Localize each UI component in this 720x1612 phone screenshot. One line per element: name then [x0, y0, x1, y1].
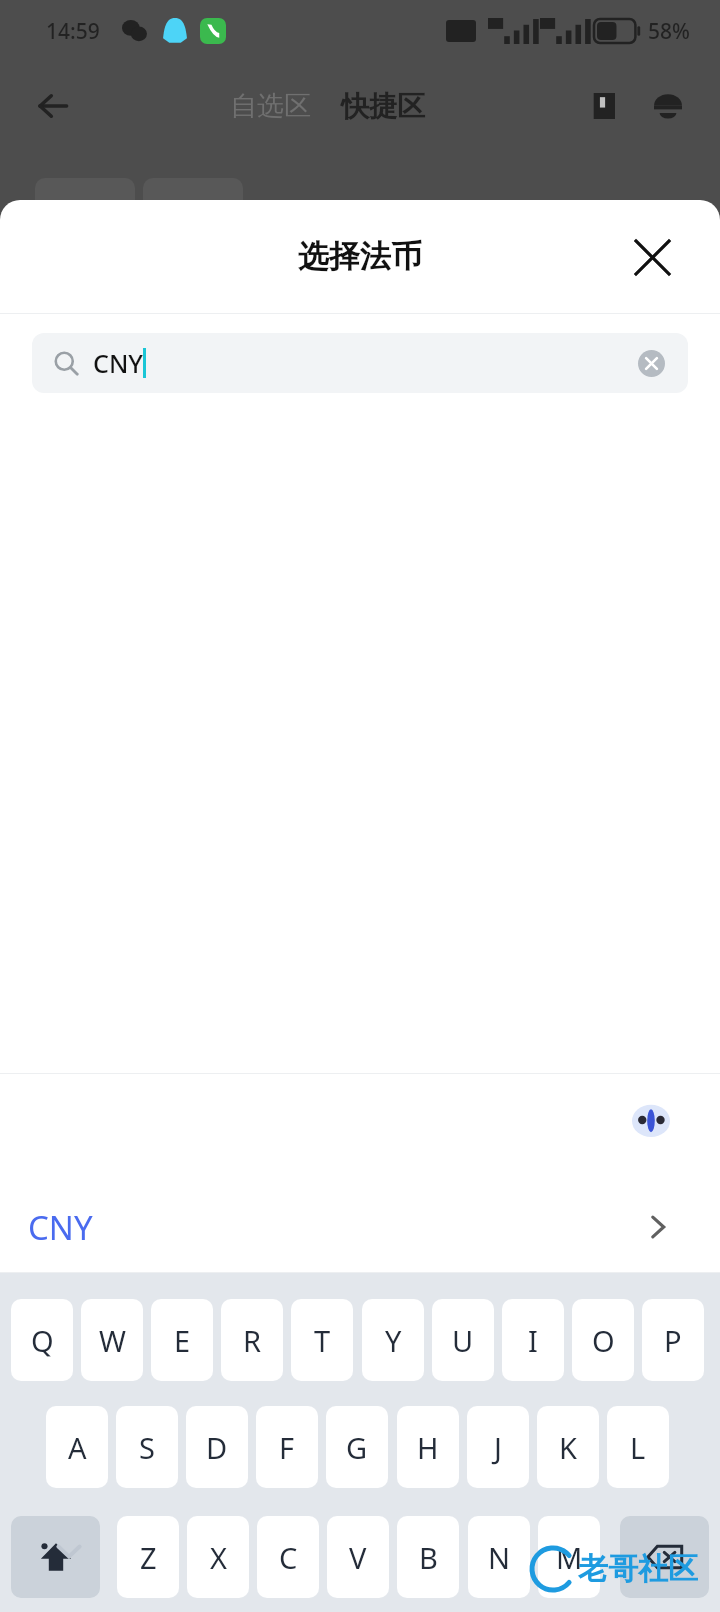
staticText: C — [279, 1538, 298, 1577]
button[interactable]: Z — [117, 1516, 179, 1598]
button[interactable]: R — [221, 1299, 283, 1381]
button[interactable]: 快捷区 — [335, 89, 431, 124]
staticText: J — [494, 1428, 502, 1467]
button[interactable]: N — [468, 1516, 530, 1598]
staticText: S — [139, 1428, 155, 1467]
button[interactable]: C — [257, 1516, 319, 1598]
button[interactable]: More candidates — [636, 1205, 680, 1249]
staticText: 自选区 — [230, 89, 311, 123]
staticText: I — [528, 1321, 538, 1360]
staticText: E — [174, 1321, 191, 1360]
button[interactable]: H — [397, 1406, 459, 1488]
staticText: T — [314, 1321, 331, 1360]
staticText: A — [68, 1428, 87, 1467]
button[interactable]: O — [572, 1299, 634, 1381]
button[interactable]: M — [538, 1516, 600, 1598]
button[interactable]: CNY — [32, 333, 688, 393]
staticText: 58% — [648, 17, 690, 46]
staticText: O — [592, 1321, 615, 1360]
button[interactable]: K — [537, 1406, 599, 1488]
button[interactable]: X — [187, 1516, 249, 1598]
button[interactable]: I — [502, 1299, 564, 1381]
staticText: CNY — [28, 1205, 93, 1250]
button[interactable]: J — [467, 1406, 529, 1488]
staticText: 选择法币 — [298, 237, 422, 276]
staticText: D — [206, 1428, 228, 1467]
staticText: Z — [140, 1538, 157, 1577]
button[interactable]: S — [116, 1406, 178, 1488]
button[interactable]: L — [607, 1406, 669, 1488]
button[interactable]: Shift — [11, 1516, 100, 1598]
staticText: F — [279, 1428, 295, 1467]
staticText: 14:59 — [46, 17, 100, 46]
button[interactable]: Service — [646, 84, 690, 128]
button[interactable]: 自选区 — [224, 89, 317, 123]
staticText: U — [452, 1321, 474, 1360]
staticText: 老哥社区 — [578, 1550, 698, 1588]
button[interactable]: W — [81, 1299, 143, 1381]
button[interactable]: V — [327, 1516, 389, 1598]
staticText: P — [664, 1321, 682, 1360]
button[interactable]: E — [151, 1299, 213, 1381]
button[interactable]: F — [256, 1406, 318, 1488]
button[interactable]: B — [397, 1516, 459, 1598]
button[interactable]: Hide keyboard — [46, 1528, 92, 1574]
button[interactable]: D — [186, 1406, 248, 1488]
button[interactable]: Y — [362, 1299, 424, 1381]
staticText: L — [630, 1428, 646, 1467]
button[interactable]: Back — [30, 83, 76, 129]
staticText: V — [349, 1538, 367, 1577]
staticText: G — [346, 1428, 368, 1467]
button[interactable]: CNY — [28, 1181, 680, 1273]
staticText: CNY — [93, 346, 143, 380]
button[interactable]: Clear — [636, 348, 666, 378]
staticText: W — [99, 1321, 126, 1360]
staticText: M — [556, 1538, 583, 1577]
button[interactable]: T — [291, 1299, 353, 1381]
staticText: B — [419, 1538, 438, 1577]
button[interactable]: U — [432, 1299, 494, 1381]
button[interactable]: Q — [11, 1299, 73, 1381]
button[interactable]: Close — [626, 231, 678, 283]
button[interactable]: P — [642, 1299, 704, 1381]
staticText: R — [243, 1321, 262, 1360]
staticText: Q — [31, 1321, 54, 1360]
button[interactable]: G — [326, 1406, 388, 1488]
button[interactable]: A — [46, 1406, 108, 1488]
staticText: N — [488, 1538, 511, 1577]
staticText: Y — [385, 1321, 402, 1360]
button[interactable]: Help — [580, 84, 624, 128]
button[interactable]: Backspace — [620, 1516, 709, 1598]
staticText: X — [210, 1538, 227, 1577]
staticText: K — [559, 1428, 577, 1467]
staticText: 快捷区 — [341, 89, 425, 124]
staticText: H — [417, 1428, 439, 1467]
